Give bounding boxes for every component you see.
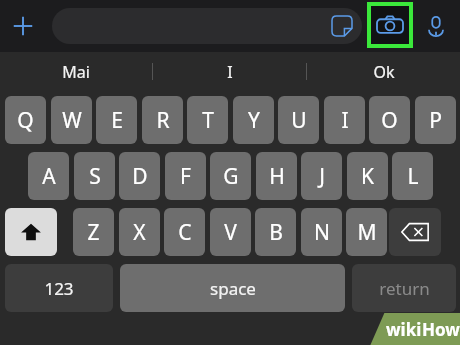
button[interactable]: Y: [233, 96, 274, 144]
button[interactable]: V: [210, 208, 251, 256]
button[interactable]: K: [347, 152, 388, 200]
button[interactable]: E: [96, 96, 137, 144]
staticText: L: [407, 162, 419, 191]
staticText: How: [422, 318, 460, 341]
staticText: K: [361, 162, 374, 191]
button[interactable]: return: [352, 264, 456, 312]
button[interactable]: J: [301, 152, 342, 200]
button[interactable]: S: [74, 152, 115, 200]
button[interactable]: Voice input: [420, 10, 452, 42]
staticText: B: [269, 218, 283, 247]
button[interactable]: Q: [5, 96, 46, 144]
button[interactable]: Backspace: [389, 208, 441, 256]
button[interactable]: N: [301, 208, 342, 256]
button[interactable]: C: [164, 208, 205, 256]
button[interactable]: Stickers: [52, 8, 362, 44]
staticText: G: [223, 162, 239, 191]
button[interactable]: H: [256, 152, 297, 200]
button[interactable]: O: [369, 96, 410, 144]
button[interactable]: Stickers: [330, 14, 354, 38]
staticText: F: [180, 162, 191, 191]
button[interactable]: Add attachment: [6, 9, 40, 43]
button[interactable]: space: [120, 264, 345, 312]
button[interactable]: Camera: [371, 6, 409, 44]
staticText: W: [62, 106, 82, 135]
button[interactable]: T: [187, 96, 228, 144]
staticText: N: [314, 218, 330, 247]
staticText: J: [319, 162, 325, 191]
button[interactable]: P: [415, 96, 456, 144]
staticText: Z: [87, 218, 100, 247]
staticText: D: [132, 162, 148, 191]
button[interactable]: D: [119, 152, 160, 200]
staticText: X: [133, 218, 146, 247]
staticText: O: [381, 106, 398, 135]
staticText: U: [291, 106, 307, 135]
button[interactable]: Z: [73, 208, 114, 256]
button[interactable]: L: [392, 152, 433, 200]
button[interactable]: W: [51, 96, 92, 144]
button[interactable]: R: [142, 96, 183, 144]
staticText: E: [111, 106, 123, 135]
button[interactable]: G: [210, 152, 251, 200]
button[interactable]: Ok: [307, 52, 460, 91]
staticText: Mai: [62, 61, 90, 83]
staticText: wiki: [386, 318, 422, 341]
button[interactable]: F: [165, 152, 206, 200]
button[interactable]: Shift: [5, 208, 57, 256]
button[interactable]: B: [255, 208, 296, 256]
staticText: V: [224, 218, 237, 247]
button[interactable]: U: [278, 96, 319, 144]
staticText: S: [89, 162, 101, 191]
staticText: Q: [17, 106, 34, 135]
staticText: 123: [44, 277, 74, 300]
staticText: return: [379, 277, 430, 300]
staticText: T: [202, 106, 214, 135]
staticText: space: [210, 277, 256, 300]
button[interactable]: I: [153, 52, 306, 91]
staticText: Ok: [373, 61, 395, 83]
staticText: R: [156, 106, 170, 135]
staticText: A: [42, 162, 56, 191]
staticText: I: [227, 61, 233, 83]
staticText: H: [269, 162, 285, 191]
staticText: C: [178, 218, 192, 247]
button[interactable]: M: [346, 208, 387, 256]
button[interactable]: I: [324, 96, 365, 144]
button[interactable]: A: [28, 152, 69, 200]
staticText: I: [341, 106, 349, 135]
staticText: M: [357, 218, 377, 247]
button[interactable]: X: [119, 208, 160, 256]
staticText: Y: [248, 106, 260, 135]
button[interactable]: 123: [5, 264, 113, 312]
staticText: P: [429, 106, 442, 135]
button[interactable]: Mai: [0, 52, 152, 91]
